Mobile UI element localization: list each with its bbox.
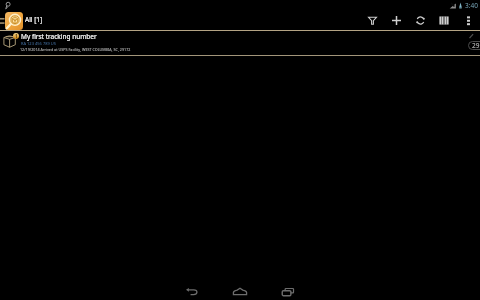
button[interactable]: Scan barcode: [432, 11, 456, 30]
staticText: My first tracking number: [21, 32, 97, 41]
button[interactable]: Home: [216, 278, 264, 300]
staticText: 3:40: [465, 1, 478, 10]
button[interactable]: Filter: [360, 11, 384, 30]
staticText: 12/19/2014 Arrived at USPS Facility, WES…: [20, 47, 131, 52]
button[interactable]: Back: [168, 278, 216, 300]
staticText: All [1]: [25, 15, 43, 24]
button[interactable]: 1: [0, 31, 480, 55]
staticText: RA 123 456 789 US: [21, 41, 56, 46]
button[interactable]: All [1]: [5, 11, 43, 30]
button[interactable]: Recent apps: [264, 278, 312, 300]
button[interactable]: Refresh: [408, 11, 432, 30]
staticText: 1: [15, 33, 18, 39]
staticText: 29: [472, 41, 480, 50]
button[interactable]: Add tracking number: [384, 11, 408, 30]
button[interactable]: Navigate up: [0, 11, 5, 30]
button[interactable]: More options: [456, 11, 480, 30]
